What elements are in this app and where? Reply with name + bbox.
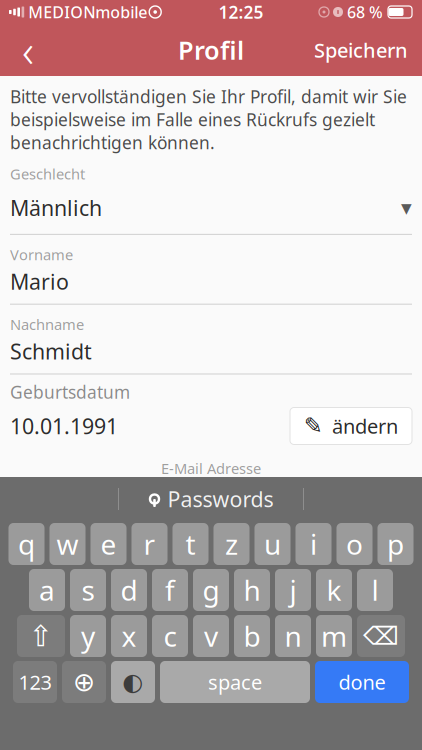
- button[interactable]: c: [152, 615, 188, 657]
- button[interactable]: Zurück: [0, 24, 56, 76]
- staticText: a: [39, 571, 55, 609]
- button[interactable]: q: [8, 523, 44, 565]
- staticText: i: [310, 525, 317, 563]
- staticText: w: [56, 525, 78, 563]
- button[interactable]: done: [315, 661, 409, 703]
- staticText: Straße: [10, 517, 54, 536]
- staticText: Bitte vervollständigen Sie Ihr Profil, d…: [10, 85, 407, 154]
- button[interactable]: h: [234, 569, 270, 611]
- staticText: 10.01.1991: [10, 412, 118, 440]
- staticText: Profil: [178, 33, 244, 67]
- staticText: r: [143, 525, 155, 563]
- staticText: Geschlecht: [10, 164, 85, 184]
- staticText: s: [81, 571, 94, 609]
- button[interactable]: k: [316, 569, 352, 611]
- button[interactable]: w: [49, 523, 85, 565]
- staticText: Hauptstraße: [10, 539, 135, 568]
- staticText: E-Mail Adresse: [161, 458, 261, 478]
- button[interactable]: s: [70, 569, 106, 611]
- staticText: b: [243, 617, 260, 655]
- staticText: Männlich: [10, 193, 102, 222]
- staticText: y: [81, 617, 95, 655]
- staticText: g: [202, 571, 219, 609]
- staticText: t: [185, 525, 195, 563]
- staticText: k: [326, 571, 341, 609]
- staticText: ✎: [304, 413, 323, 439]
- button[interactable]: x: [111, 615, 147, 657]
- staticText: e: [100, 525, 116, 563]
- staticText: h: [243, 571, 260, 609]
- button[interactable]: i: [295, 523, 331, 565]
- staticText: p: [387, 525, 404, 563]
- button[interactable]: y: [70, 615, 106, 657]
- button[interactable]: v: [193, 615, 229, 657]
- button[interactable]: e: [90, 523, 126, 565]
- staticText: 12:25: [219, 0, 264, 23]
- staticText: m: [321, 617, 347, 655]
- staticText: 68 %: [347, 1, 383, 23]
- button[interactable]: Umschalt: [17, 615, 65, 657]
- button[interactable]: n: [275, 615, 311, 657]
- staticText: ⌫: [363, 622, 399, 650]
- staticText: f: [165, 571, 175, 609]
- staticText: q: [18, 525, 35, 563]
- staticText: u: [264, 525, 281, 563]
- button[interactable]: f: [152, 569, 188, 611]
- button[interactable]: a: [29, 569, 65, 611]
- button[interactable]: p: [377, 523, 413, 565]
- button[interactable]: u: [254, 523, 290, 565]
- staticText: Mario: [10, 267, 69, 296]
- staticText: j: [289, 571, 296, 609]
- staticText: v: [204, 617, 218, 655]
- staticText: ⇧: [28, 619, 53, 653]
- staticText: ◐: [122, 668, 143, 696]
- staticText: space: [208, 669, 262, 695]
- staticText: Schmidt: [10, 337, 92, 365]
- button[interactable]: space: [160, 661, 310, 703]
- staticText: n: [284, 617, 301, 655]
- button[interactable]: o: [336, 523, 372, 565]
- staticText: Passwords: [167, 485, 273, 513]
- staticText: ‹: [22, 20, 34, 80]
- button[interactable]: t: [172, 523, 208, 565]
- staticText: ändern: [332, 413, 398, 439]
- button[interactable]: g: [193, 569, 229, 611]
- button[interactable]: r: [131, 523, 167, 565]
- staticText: MEDIONmobile: [24, 1, 147, 23]
- button[interactable]: j: [275, 569, 311, 611]
- staticText: x: [121, 617, 136, 655]
- staticText: ⊕: [73, 667, 95, 697]
- button[interactable]: Männlich: [10, 187, 412, 228]
- staticText: ▾: [401, 196, 412, 220]
- button[interactable]: Speichern: [300, 24, 422, 76]
- button[interactable]: Passwords: [132, 479, 289, 519]
- staticText: done: [338, 669, 385, 695]
- staticText: 123: [18, 669, 51, 695]
- staticText: c: [163, 617, 176, 655]
- staticText: z: [225, 525, 238, 563]
- button[interactable]: Sprache wechseln: [62, 661, 106, 703]
- button[interactable]: l: [357, 569, 393, 611]
- staticText: l: [371, 571, 378, 609]
- staticText: o: [346, 525, 363, 563]
- staticText: Nachname: [10, 315, 84, 334]
- button[interactable]: z: [213, 523, 249, 565]
- staticText: Geburtsdatum: [10, 380, 130, 403]
- button[interactable]: ✎: [290, 407, 412, 444]
- button[interactable]: d: [111, 569, 147, 611]
- staticText: Vorname: [10, 245, 73, 264]
- button[interactable]: m: [316, 615, 352, 657]
- button[interactable]: Diktieren: [111, 661, 155, 703]
- button[interactable]: Löschen: [357, 615, 405, 657]
- staticText: d: [120, 571, 137, 609]
- button[interactable]: 123: [13, 661, 57, 703]
- staticText: Speichern: [314, 37, 408, 63]
- button[interactable]: b: [234, 615, 270, 657]
